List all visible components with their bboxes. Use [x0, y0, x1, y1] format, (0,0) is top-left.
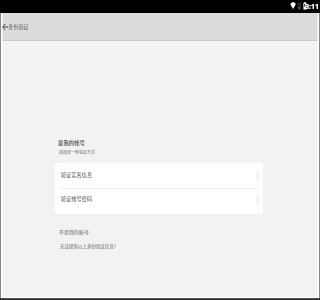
staticText: 是我的帐号: [58, 139, 85, 147]
button[interactable]: 无法提供以上身份验证信息?: [60, 243, 117, 250]
button[interactable]: 不是我的帐号: [59, 228, 90, 235]
staticText: 不是我的帐号: [59, 228, 90, 235]
staticText: 验证帐号密码: [61, 195, 93, 203]
button[interactable]: 验证实名信息: [55, 163, 263, 188]
staticText: 3:11: [305, 2, 319, 12]
button[interactable]: 验证帐号密码: [55, 189, 263, 214]
button[interactable]: Back: [0, 20, 10, 34]
staticText: 请选择一种验证方式: [59, 149, 95, 155]
staticText: 无法提供以上身份验证信息?: [60, 243, 117, 250]
staticText: 身份验证: [8, 23, 29, 31]
staticText: 验证实名信息: [61, 171, 93, 179]
